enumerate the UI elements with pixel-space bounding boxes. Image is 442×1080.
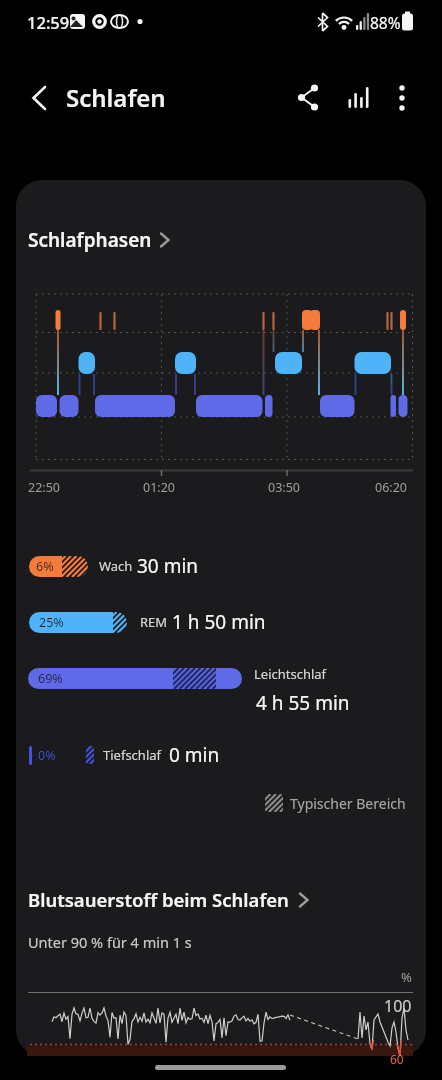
staticText: 22:50 [28, 479, 60, 496]
button[interactable] [22, 82, 56, 116]
staticText: % [401, 968, 412, 986]
button[interactable] [386, 80, 420, 116]
staticText: 01:20 [143, 479, 175, 496]
staticText: Schlafen [66, 81, 166, 114]
staticText: 4 h 55 min [256, 690, 350, 716]
button[interactable] [28, 884, 318, 916]
staticText: 12:59 [27, 11, 70, 33]
staticText: Blutsauerstoff beim Schlafen [28, 887, 289, 912]
staticText: 30 min [137, 553, 199, 579]
staticText: Wach [99, 557, 133, 575]
staticText: 60 [390, 1051, 404, 1067]
staticText: REM [140, 613, 168, 631]
staticText: 25% [39, 614, 64, 631]
staticText: 0 min [169, 742, 220, 768]
button[interactable] [292, 80, 328, 116]
staticText: 06:20 [375, 479, 407, 496]
button[interactable] [342, 80, 378, 116]
staticText: 03:50 [268, 479, 300, 496]
staticText: Tiefschlaf [103, 746, 162, 764]
staticText: 0% [38, 747, 56, 764]
staticText: Leichtschlaf [254, 665, 327, 683]
staticText: Typischer Bereich [290, 794, 406, 813]
staticText: 69% [38, 670, 63, 687]
staticText: Schlafphasen [28, 227, 152, 253]
staticText: 100 [384, 995, 412, 1017]
staticText: 6% [36, 558, 54, 575]
button[interactable] [28, 222, 188, 256]
staticText: 1 h 50 min [172, 609, 266, 635]
staticText: 88% [370, 12, 401, 33]
staticText: Unter 90 % für 4 min 1 s [28, 932, 192, 952]
